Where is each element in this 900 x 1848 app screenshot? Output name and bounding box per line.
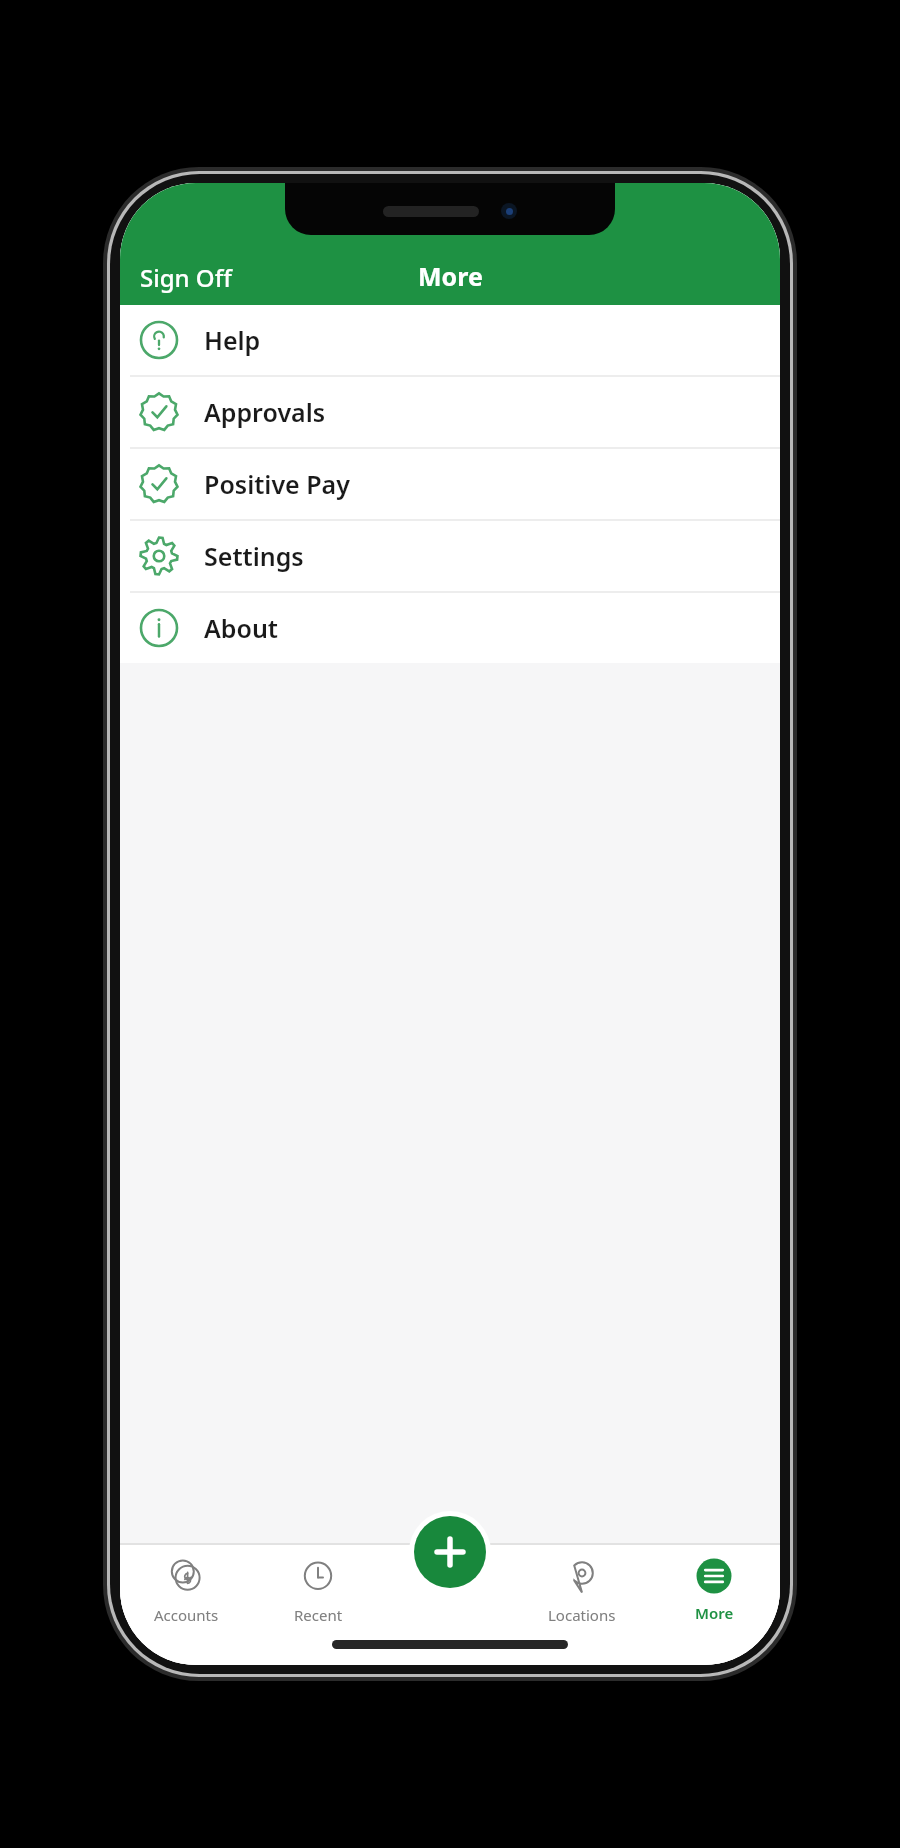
button[interactable]: Sign Off <box>120 249 246 305</box>
button[interactable]: Locations <box>516 1543 648 1643</box>
staticText: Help <box>204 323 261 357</box>
staticText: More <box>418 259 483 293</box>
staticText: Recent <box>294 1605 343 1625</box>
staticText: More <box>695 1603 734 1623</box>
staticText: Positive Pay <box>204 467 350 501</box>
button[interactable]: About <box>120 593 780 663</box>
button[interactable]: More <box>648 1543 780 1643</box>
button[interactable]: Positive Pay <box>120 449 780 521</box>
button[interactable]: Help <box>120 305 780 377</box>
staticText: About <box>204 611 278 645</box>
staticText: Locations <box>548 1605 616 1625</box>
button[interactable]: Accounts <box>120 1543 252 1643</box>
staticText: Accounts <box>154 1605 219 1625</box>
button[interactable]: Recent <box>252 1543 384 1643</box>
button[interactable]: Settings <box>120 521 780 593</box>
button[interactable]: Approvals <box>120 377 780 449</box>
staticText: Sign Off <box>140 261 232 294</box>
button[interactable]: Add <box>414 1516 486 1588</box>
staticText: Settings <box>204 539 304 573</box>
staticText: Approvals <box>204 395 326 429</box>
